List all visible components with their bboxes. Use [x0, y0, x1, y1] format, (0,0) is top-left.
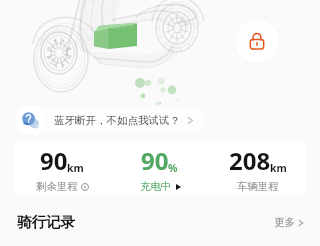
staticText: km	[270, 161, 287, 175]
staticText: %	[168, 161, 178, 175]
staticText: 蓝牙断开，不如点我试试？	[54, 114, 180, 127]
staticText: 骑行记录	[17, 213, 75, 231]
button[interactable]: Lock vehicle	[235, 19, 279, 63]
button[interactable]: 90	[111, 141, 209, 196]
button[interactable]: 208	[209, 141, 307, 196]
button[interactable]: 蓝牙断开，不如点我试试？	[15, 106, 203, 134]
staticText: 90	[141, 144, 169, 177]
staticText: 车辆里程	[237, 180, 279, 193]
button[interactable]: 90	[13, 141, 111, 196]
staticText: km	[67, 161, 84, 175]
staticText: 剩余里程	[36, 180, 78, 193]
staticText: 更多	[274, 216, 295, 229]
button[interactable]: 更多	[274, 212, 304, 233]
staticText: 208	[229, 144, 271, 177]
staticText: 90	[40, 144, 68, 177]
staticText: 充电中	[140, 180, 172, 193]
